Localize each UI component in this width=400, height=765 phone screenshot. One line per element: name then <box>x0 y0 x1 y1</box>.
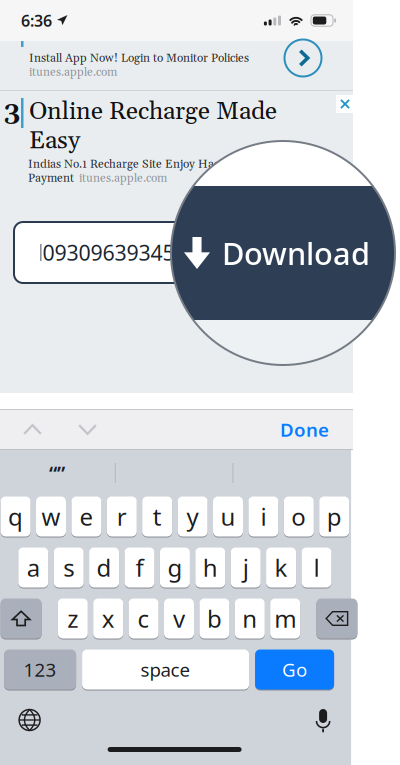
button[interactable]: u <box>213 496 243 537</box>
staticText: 6:36 <box>21 10 52 31</box>
button[interactable]: Open promotion <box>280 35 326 81</box>
staticText: d <box>97 552 112 583</box>
button[interactable]: k <box>266 547 296 588</box>
staticText: f <box>135 552 143 583</box>
button[interactable]: s <box>54 547 84 588</box>
staticText: t <box>153 501 162 532</box>
button[interactable]: space <box>82 649 249 690</box>
staticText: q <box>8 501 23 532</box>
button[interactable]: p <box>319 496 349 537</box>
staticText: i <box>260 501 266 532</box>
staticText: Online Recharge Made <box>29 96 277 127</box>
staticText: r <box>117 501 127 532</box>
staticText: j <box>243 552 249 583</box>
button[interactable]: g <box>160 547 190 588</box>
button[interactable]: b <box>199 598 229 639</box>
button[interactable]: r <box>107 496 137 537</box>
button[interactable]: Previous field <box>14 415 51 444</box>
staticText: y <box>187 501 199 532</box>
staticText: itunes.apple.com <box>29 65 117 80</box>
staticText: k <box>275 552 288 583</box>
button[interactable]: h <box>195 547 225 588</box>
button[interactable]: f <box>124 547 154 588</box>
button[interactable]: o <box>284 496 314 537</box>
staticText: Go <box>282 657 307 682</box>
staticText: u <box>220 501 235 532</box>
staticText: 3 <box>4 95 20 128</box>
button[interactable]: n <box>235 598 265 639</box>
button[interactable]: q <box>1 496 31 537</box>
button[interactable]: Close ad <box>334 93 356 115</box>
button[interactable]: t <box>142 496 172 537</box>
staticText: l <box>313 552 319 583</box>
staticText: e <box>79 501 93 532</box>
staticText: c <box>138 603 150 634</box>
staticText: 09309639345271 <box>43 238 211 267</box>
staticText: 123 <box>24 657 57 682</box>
button[interactable]: v <box>164 598 194 639</box>
button[interactable]: Next keyboard <box>12 702 47 737</box>
staticText: itunes.apple.com <box>79 171 167 186</box>
button[interactable]: c <box>129 598 159 639</box>
button[interactable]: m <box>270 598 300 639</box>
staticText: Install App Now! Login to Monitor Polici… <box>29 51 249 66</box>
button[interactable]: Delete <box>316 598 357 639</box>
staticText: n <box>242 603 257 634</box>
staticText: g <box>167 552 182 583</box>
button[interactable]: e <box>71 496 101 537</box>
button[interactable]: l <box>301 547 331 588</box>
button[interactable]: Done <box>272 409 337 450</box>
staticText: space <box>141 657 191 682</box>
button[interactable]: Shift <box>1 598 42 639</box>
staticText: w <box>41 501 60 532</box>
staticText: b <box>207 603 222 634</box>
button[interactable]: y <box>178 496 208 537</box>
staticText: h <box>203 552 218 583</box>
button[interactable]: d <box>89 547 119 588</box>
button[interactable]: i <box>248 496 278 537</box>
button[interactable]: Go <box>255 649 334 690</box>
staticText: Done <box>280 417 329 442</box>
button[interactable]: w <box>36 496 66 537</box>
staticText: a <box>27 552 40 583</box>
button[interactable]: z <box>58 598 88 639</box>
staticText: s <box>63 552 74 583</box>
staticText: z <box>67 603 78 634</box>
button[interactable]: Next field <box>69 415 106 444</box>
staticText: Easy <box>29 125 80 157</box>
staticText: Download <box>222 233 370 273</box>
staticText: v <box>173 603 185 634</box>
button[interactable]: a <box>18 547 48 588</box>
button[interactable]: Dictate <box>309 702 337 738</box>
button[interactable]: x <box>93 598 123 639</box>
staticText: p <box>327 501 342 532</box>
staticText: o <box>291 501 306 532</box>
button[interactable]: 123 <box>4 649 76 690</box>
staticText: m <box>274 603 296 634</box>
staticText: Indias No.1 Recharge Site Enjoy Hassle F… <box>28 157 260 172</box>
staticText: x <box>102 603 115 634</box>
staticText: Payment <box>28 171 74 186</box>
button[interactable]: j <box>231 547 261 588</box>
staticText: “” <box>49 460 65 486</box>
